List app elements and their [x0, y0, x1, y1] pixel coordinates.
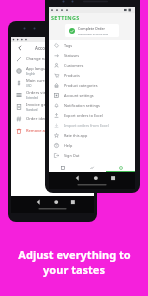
button[interactable]: Complete Order	[65, 24, 119, 37]
button[interactable]: Help	[49, 140, 135, 150]
button[interactable]: Change name	[11, 53, 94, 65]
button[interactable]: Account settings	[49, 90, 135, 100]
staticText: Rate this app	[64, 133, 88, 138]
button[interactable]: Order identifier	[11, 113, 94, 125]
staticText: Export orders to Excel	[64, 113, 103, 118]
button[interactable]: Statistics	[77, 163, 106, 172]
staticText: Complete Order	[78, 26, 105, 31]
staticText: Remove account	[26, 128, 58, 134]
staticText: Notification settings	[64, 103, 100, 108]
staticText: Account settings	[64, 93, 94, 98]
button[interactable]: Customers	[49, 60, 135, 70]
staticText: Products	[64, 73, 80, 78]
staticText: Extended	[26, 96, 38, 100]
staticText: Adjust everything to	[18, 247, 131, 262]
button[interactable]: Remove account	[11, 125, 94, 137]
button[interactable]: Main currency	[11, 77, 94, 89]
button[interactable]: Products	[49, 70, 135, 80]
staticText: Customers	[64, 63, 84, 68]
staticText: Tags	[64, 43, 73, 48]
staticText: Statuses	[64, 53, 80, 58]
staticText: App language	[26, 66, 53, 72]
button[interactable]: Invoice generator	[11, 101, 94, 113]
button[interactable]: Notification settings	[49, 100, 135, 110]
staticText: SETTINGS	[51, 14, 80, 21]
button[interactable]: Orders view	[11, 89, 94, 101]
staticText: Help	[64, 143, 73, 148]
staticText: Product categories	[64, 83, 98, 88]
staticText: Subscription till 28.05.2020	[78, 32, 109, 35]
button[interactable]: Tags	[49, 40, 135, 50]
staticText: Orders view	[26, 90, 49, 96]
staticText: Invoice generator	[26, 102, 61, 108]
staticText: Main currency	[26, 78, 54, 84]
button[interactable]: Back	[15, 43, 25, 53]
button[interactable]: App language	[11, 65, 94, 77]
button[interactable]: Export orders to Excel	[49, 110, 135, 120]
staticText: your tastes	[43, 262, 105, 277]
button[interactable]: Settings	[106, 163, 135, 172]
button[interactable]: Import orders from Excel	[49, 120, 135, 130]
button[interactable]: Product categories	[49, 80, 135, 90]
staticText: Sign Out	[64, 153, 80, 158]
staticText: Change name	[26, 56, 53, 62]
button[interactable]: Sign Out	[49, 150, 135, 160]
button[interactable]: Rate this app	[49, 130, 135, 140]
button[interactable]: Orders	[49, 163, 77, 172]
staticText: Order identifier	[26, 116, 56, 122]
staticText: USD	[26, 84, 32, 88]
staticText: English	[26, 72, 36, 76]
button[interactable]: Statuses	[49, 50, 135, 60]
staticText: Standard	[26, 108, 38, 112]
staticText: Import orders from Excel	[64, 123, 109, 128]
staticText: Account settings	[35, 45, 71, 51]
